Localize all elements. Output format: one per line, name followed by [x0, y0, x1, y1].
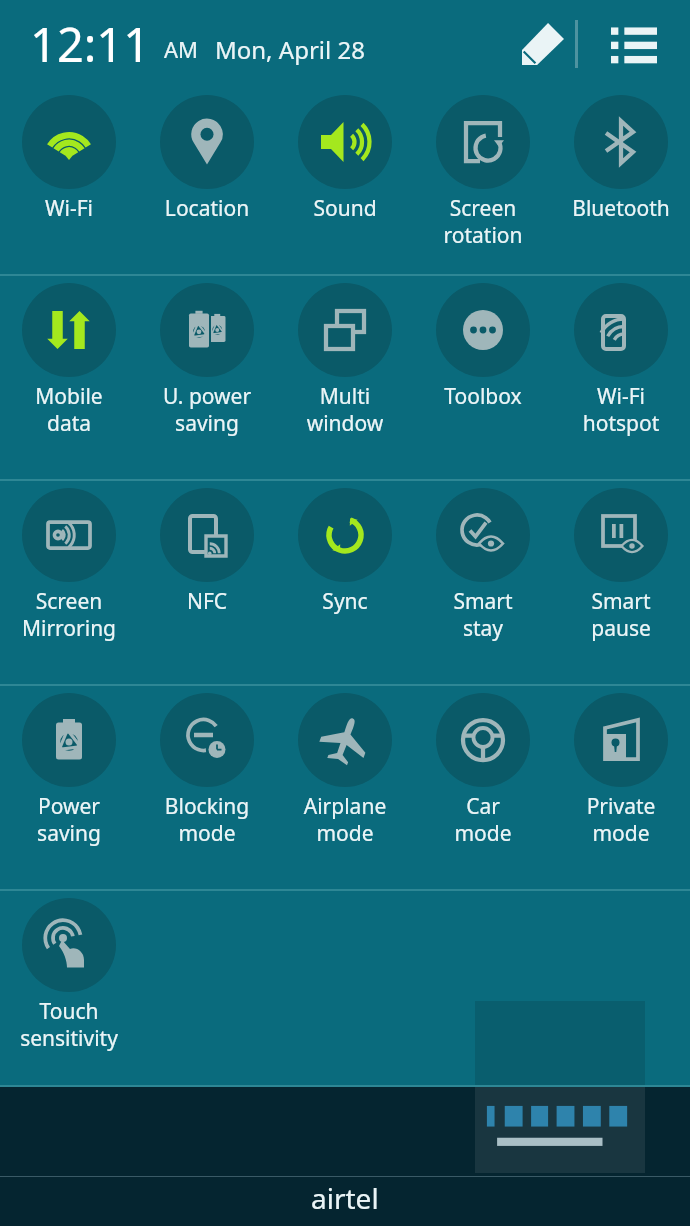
- staticText: AM: [164, 34, 199, 64]
- staticText: Sound: [276, 194, 414, 223]
- button[interactable]: Touch sensitivity: [0, 891, 138, 1052]
- button[interactable]: Airplane mode: [276, 686, 414, 847]
- staticText: airtel: [311, 1179, 379, 1217]
- button[interactable]: Sound: [276, 88, 414, 223]
- staticText: NFC: [138, 587, 276, 616]
- staticText: Screen rotation: [414, 194, 552, 249]
- button[interactable]: Toolbox: [414, 276, 552, 411]
- button[interactable]: Sync: [276, 481, 414, 616]
- staticText: Multi window: [276, 382, 414, 437]
- staticText: Touch sensitivity: [0, 997, 138, 1052]
- staticText: Mobile data: [0, 382, 138, 437]
- staticText: Wi-Fi: [0, 194, 138, 223]
- staticText: Smart pause: [552, 587, 690, 642]
- staticText: Airplane mode: [276, 792, 414, 847]
- button[interactable]: Power saving: [0, 686, 138, 847]
- staticText: Smart stay: [414, 587, 552, 642]
- button[interactable]: Location: [138, 88, 276, 223]
- staticText: Blocking mode: [138, 792, 276, 847]
- staticText: Private mode: [552, 792, 690, 847]
- staticText: Wi-Fi hotspot: [552, 382, 690, 437]
- button[interactable]: Notification list: [602, 12, 666, 76]
- staticText: Bluetooth: [552, 194, 690, 223]
- staticText: Power saving: [0, 792, 138, 847]
- button[interactable]: Blocking mode: [138, 686, 276, 847]
- button[interactable]: Car mode: [414, 686, 552, 847]
- button[interactable]: U. power saving: [138, 276, 276, 437]
- button[interactable]: Multi window: [276, 276, 414, 437]
- button[interactable]: Edit quick settings: [511, 12, 575, 76]
- staticText: Sync: [276, 587, 414, 616]
- staticText: 12:11: [30, 12, 151, 76]
- button[interactable]: Screen rotation: [414, 88, 552, 249]
- staticText: Screen Mirroring: [0, 587, 138, 642]
- button[interactable]: Bluetooth: [552, 88, 690, 223]
- button[interactable]: Private mode: [552, 686, 690, 847]
- button[interactable]: Wi-Fi hotspot: [552, 276, 690, 437]
- staticText: Car mode: [414, 792, 552, 847]
- button[interactable]: Mobile data: [0, 276, 138, 437]
- staticText: Location: [138, 194, 276, 223]
- staticText: Toolbox: [414, 382, 552, 411]
- button[interactable]: NFC: [138, 481, 276, 616]
- button[interactable]: Screen Mirroring: [0, 481, 138, 642]
- button[interactable]: Smart pause: [552, 481, 690, 642]
- button[interactable]: Wi-Fi: [0, 88, 138, 223]
- button[interactable]: Smart stay: [414, 481, 552, 642]
- staticText: Mon, April 28: [215, 33, 365, 66]
- staticText: U. power saving: [138, 382, 276, 437]
